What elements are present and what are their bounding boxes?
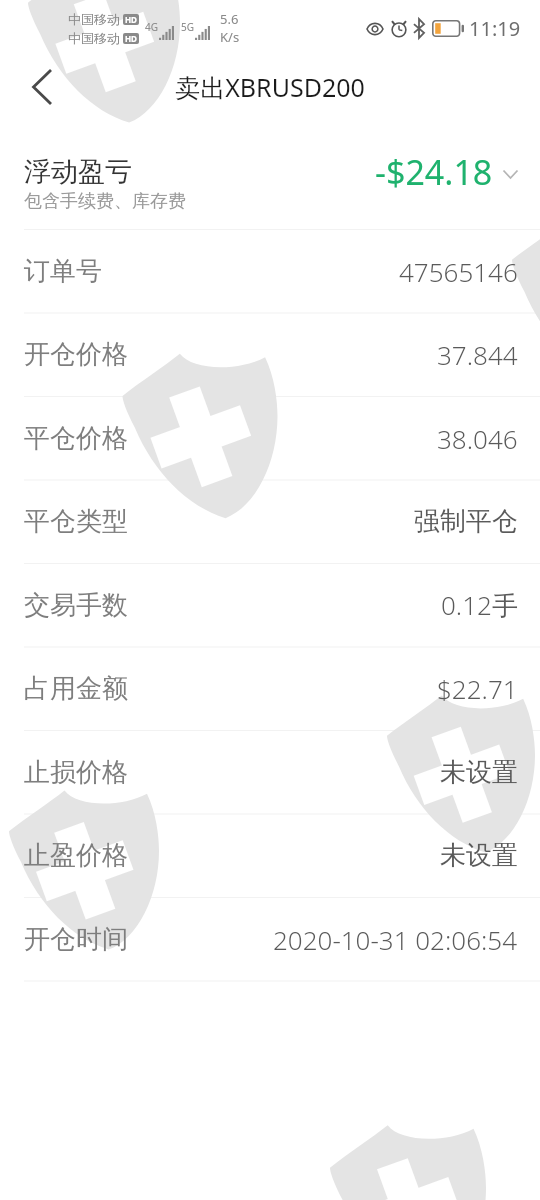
staticText: 37.844 [437,337,518,372]
button[interactable]: 止损价格 [0,730,540,814]
button[interactable]: 开仓价格 [0,313,540,396]
staticText: 开仓时间 [24,923,128,956]
other: Alarm [391,20,407,37]
button[interactable]: 平仓类型 [0,480,540,563]
staticText: 38.046 [437,421,518,456]
staticText: $22.71 [437,671,518,706]
staticText: HD [125,33,137,44]
staticText: 中国移动 [68,11,120,27]
staticText: 卖出XBRUSD200 [175,70,365,104]
button[interactable]: Back [0,56,62,118]
staticText: 平仓价格 [24,422,128,455]
staticText: 中国移动 [68,30,120,46]
other: Bluetooth [413,19,425,38]
staticText: 止损价格 [24,756,128,789]
staticText: 平仓类型 [24,505,128,538]
staticText: 占用金额 [24,672,128,705]
button[interactable]: 止盈价格 [0,814,540,897]
other: Eye comfort [366,23,384,35]
button[interactable]: 订单号 [0,229,540,313]
staticText: K/s [220,28,240,46]
staticText: 5.6 [220,10,239,28]
button[interactable]: 占用金额 [0,647,540,730]
staticText: 11:19 [469,15,521,42]
staticText: 订单号 [24,255,102,288]
staticText: HD [125,14,137,25]
staticText: 47565146 [399,254,518,289]
staticText: 包含手续费、库存费 [24,190,186,213]
staticText: 0.12手 [441,587,518,623]
staticText: 未设置 [440,839,518,872]
staticText: 5G [181,20,194,34]
button[interactable]: 开仓时间 [0,897,540,981]
staticText: 强制平仓 [414,505,518,538]
staticText: 2020-10-31 02:06:54 [273,922,518,957]
other: Battery [432,20,465,37]
staticText: -$24.18 [375,149,493,195]
button[interactable]: 浮动盈亏 [0,118,540,229]
staticText: 交易手数 [24,589,128,622]
staticText: 4G [145,20,158,34]
staticText: 浮动盈亏 [24,155,132,189]
button[interactable]: 交易手数 [0,563,540,647]
button[interactable]: 平仓价格 [0,396,540,480]
staticText: 开仓价格 [24,338,128,371]
staticText: 未设置 [440,756,518,789]
staticText: 止盈价格 [24,839,128,872]
